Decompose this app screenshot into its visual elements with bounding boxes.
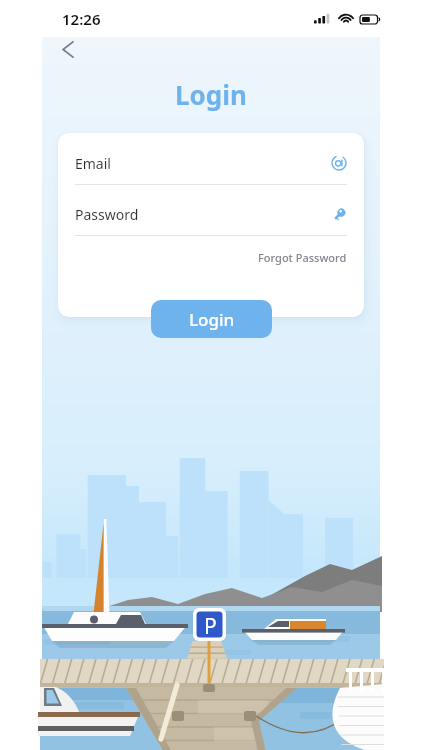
staticText: Email bbox=[75, 154, 111, 173]
staticText: 12:26 bbox=[62, 9, 101, 29]
button[interactable]: Back bbox=[47, 29, 87, 69]
staticText: P bbox=[204, 612, 217, 638]
button[interactable]: Forgot Password bbox=[75, 250, 347, 265]
staticText: Forgot Password bbox=[258, 250, 347, 265]
button[interactable]: Login bbox=[151, 300, 272, 338]
staticText: Login bbox=[42, 77, 380, 112]
staticText: Login bbox=[189, 308, 235, 331]
staticText: Password bbox=[75, 205, 139, 224]
